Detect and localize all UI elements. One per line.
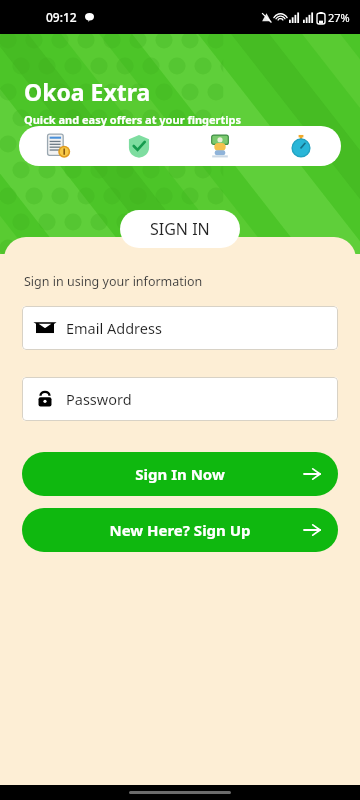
staticText: 09:12	[46, 9, 77, 25]
staticText: Okoa Extra	[24, 76, 151, 107]
staticText: Quick and easy offers at your fingertips	[24, 112, 242, 127]
staticText: Sign in using your information	[24, 273, 203, 290]
staticText: Email Address	[66, 318, 162, 338]
staticText: SIGN IN	[150, 218, 210, 240]
staticText: 27%	[328, 10, 350, 25]
button[interactable]: Sign In Now	[22, 452, 338, 496]
button[interactable]: Email Address	[22, 306, 338, 350]
button[interactable]: New Here? Sign Up	[22, 508, 338, 552]
staticText: Sign In Now	[22, 464, 338, 484]
button[interactable]: Password	[22, 377, 338, 421]
staticText: New Here? Sign Up	[22, 520, 338, 540]
staticText: Password	[66, 389, 132, 409]
button[interactable]: SIGN IN	[120, 210, 240, 248]
